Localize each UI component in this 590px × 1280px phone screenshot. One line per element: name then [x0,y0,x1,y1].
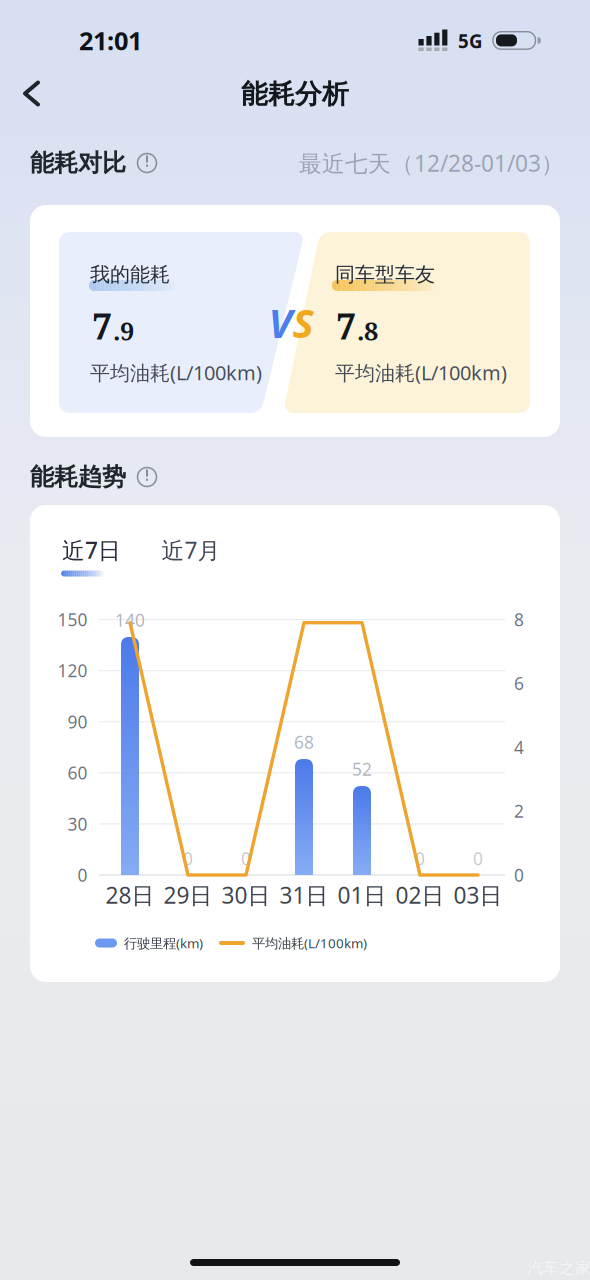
staticText: 30日 [221,880,270,910]
staticText: 平均油耗(L/100km) [335,359,507,386]
staticText: 52 [352,757,372,780]
staticText: 150 [57,608,87,631]
staticText: 2 [514,800,524,823]
staticText: 7 [92,301,112,350]
staticText: 0 [473,847,483,870]
staticText: 近7日 [62,535,121,565]
staticText: 0 [77,863,87,886]
staticText: 01日 [337,880,386,910]
staticText: 我的能耗 [90,262,170,287]
staticText: 90 [67,710,87,733]
staticText: 能耗趋势 [30,462,126,492]
staticText: 30 [67,812,87,835]
staticText: 0 [415,847,425,870]
button[interactable]: Back [14,73,50,113]
staticText: 03日 [453,880,502,910]
button[interactable]: 最近七天（12/28-01/03） [274,149,564,177]
staticText: 能耗对比 [30,148,126,178]
staticText: 0 [183,847,193,870]
staticText: 29日 [163,880,212,910]
staticText: 同车型车友 [335,262,435,287]
staticText: 最近七天（12/28-01/03） [299,148,564,178]
staticText: 31日 [279,880,328,910]
staticText: S [292,296,313,349]
staticText: .8 [357,313,378,348]
staticText: 0 [514,863,524,886]
staticText: 汽车之家 [527,1258,590,1278]
staticText: 7 [336,301,356,350]
staticText: 平均油耗(L/100km) [252,934,367,952]
button[interactable]: 近7月 [148,533,234,567]
staticText: 68 [294,730,314,753]
staticText: 5G [458,29,483,53]
staticText: 4 [514,736,524,759]
staticText: 8 [514,608,524,631]
staticText: 60 [67,761,87,784]
staticText: 140 [115,608,145,631]
staticText: 21:01 [79,24,142,57]
staticText: V [268,296,292,349]
staticText: 平均油耗(L/100km) [90,359,262,386]
staticText: 6 [514,672,524,695]
staticText: .9 [113,313,134,348]
staticText: 0 [241,847,251,870]
staticText: 能耗分析 [241,78,349,110]
staticText: 02日 [395,880,444,910]
staticText: 近7月 [161,535,220,565]
staticText: 120 [57,659,87,682]
staticText: 行驶里程(km) [124,934,203,952]
staticText: 28日 [105,880,154,910]
button[interactable]: 近7日 [58,533,140,581]
button[interactable]: 说明 [134,150,160,176]
button[interactable]: 说明 [134,464,160,490]
